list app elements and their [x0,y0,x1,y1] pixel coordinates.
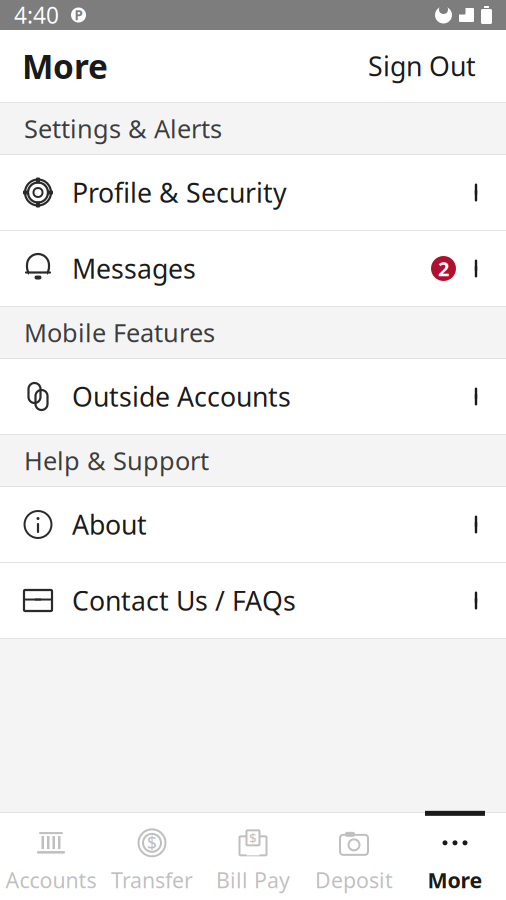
staticText: Contact Us / FAQs [72,583,296,618]
staticText: 4:40 [14,0,59,30]
staticText: Deposit [315,866,393,894]
button[interactable]: Sign Out [360,38,484,94]
button[interactable]: Deposit [303,813,404,900]
staticText: P [74,6,82,24]
staticText: Outside Accounts [72,379,291,414]
staticText: Sign Out [368,48,476,84]
button[interactable]: Outside Accounts [0,359,506,434]
staticText: Profile & Security [72,175,287,210]
staticText: 2 [438,255,449,282]
staticText: Settings & Alerts [24,112,222,145]
button[interactable]: Accounts [0,813,101,900]
staticText: $ [249,829,257,847]
staticText: Help & Support [24,444,209,477]
button[interactable]: Messages [0,231,506,306]
staticText: More [427,866,482,894]
staticText: $ [147,831,157,854]
button[interactable]: Transfer [101,813,202,900]
staticText: More [22,44,108,88]
staticText: Bill Pay [216,866,290,894]
staticText: About [72,507,147,542]
button[interactable]: About [0,487,506,562]
staticText: Transfer [111,866,193,894]
staticText: Messages [72,251,196,286]
staticText: Mobile Features [24,316,215,349]
button[interactable]: Contact Us / FAQs [0,563,506,638]
staticText: Accounts [5,866,96,894]
button[interactable]: Profile & Security [0,155,506,230]
button[interactable]: More [404,813,505,900]
button[interactable]: Bill Pay [202,813,303,900]
